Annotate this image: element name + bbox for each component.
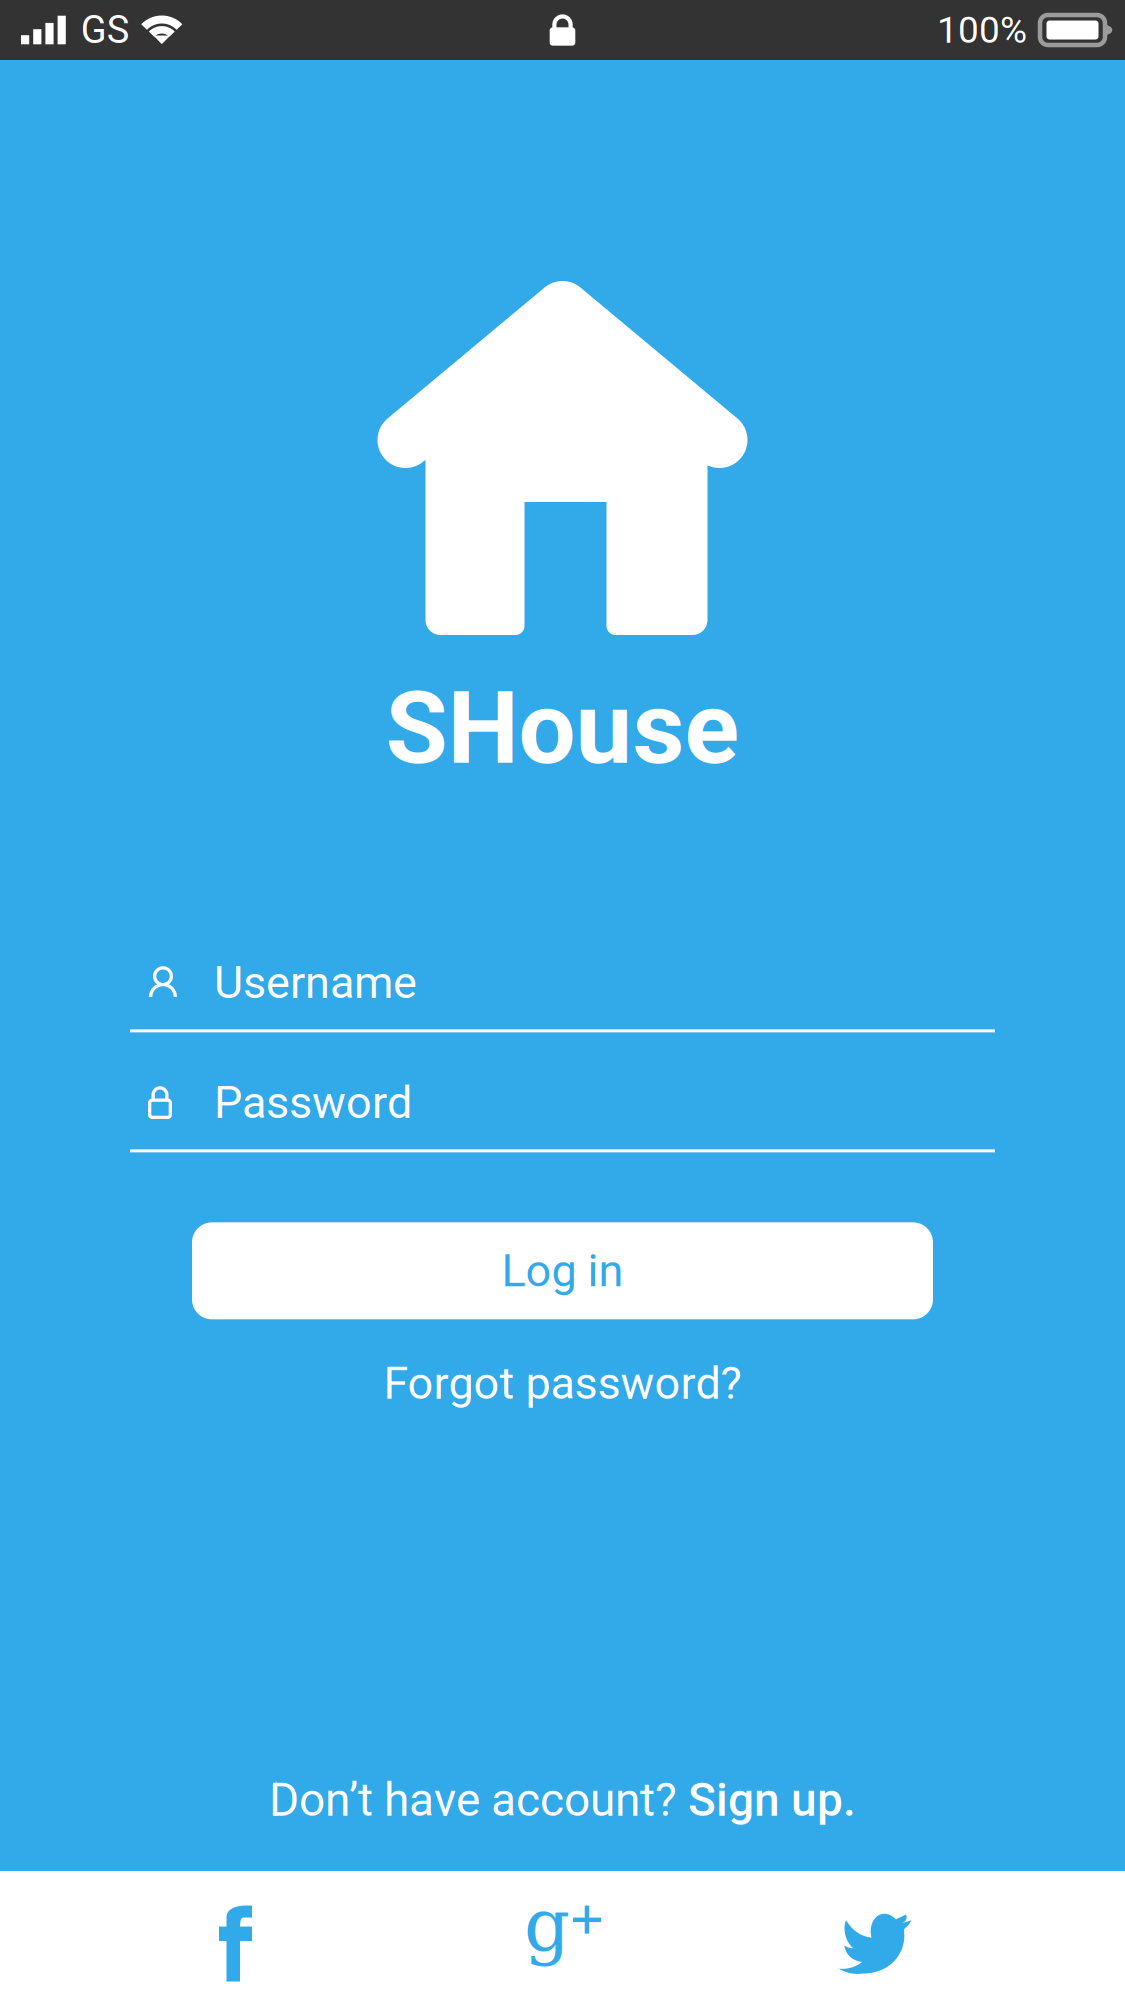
staticText: Sign up.	[688, 1773, 856, 1827]
button[interactable]: Log in	[192, 1222, 933, 1319]
staticText: GS	[81, 8, 130, 52]
staticText: Username	[214, 956, 417, 1009]
staticText: SHouse	[385, 669, 739, 787]
button[interactable]: Don’t have account?	[269, 1769, 856, 1831]
staticText: Forgot password?	[383, 1357, 741, 1410]
staticText: Log in	[501, 1244, 623, 1297]
button[interactable]: Sign in with Facebook	[146, 1871, 326, 2016]
staticText: Don’t have account?	[269, 1773, 688, 1827]
staticText: g	[524, 1884, 570, 1967]
button[interactable]: Sign in with Google Plus	[472, 1871, 652, 2016]
button[interactable]: Forgot password?	[383, 1353, 741, 1413]
staticText: Password	[214, 1076, 412, 1129]
staticText: 100%	[937, 8, 1027, 52]
button[interactable]: Sign in with Twitter	[799, 1871, 979, 2016]
